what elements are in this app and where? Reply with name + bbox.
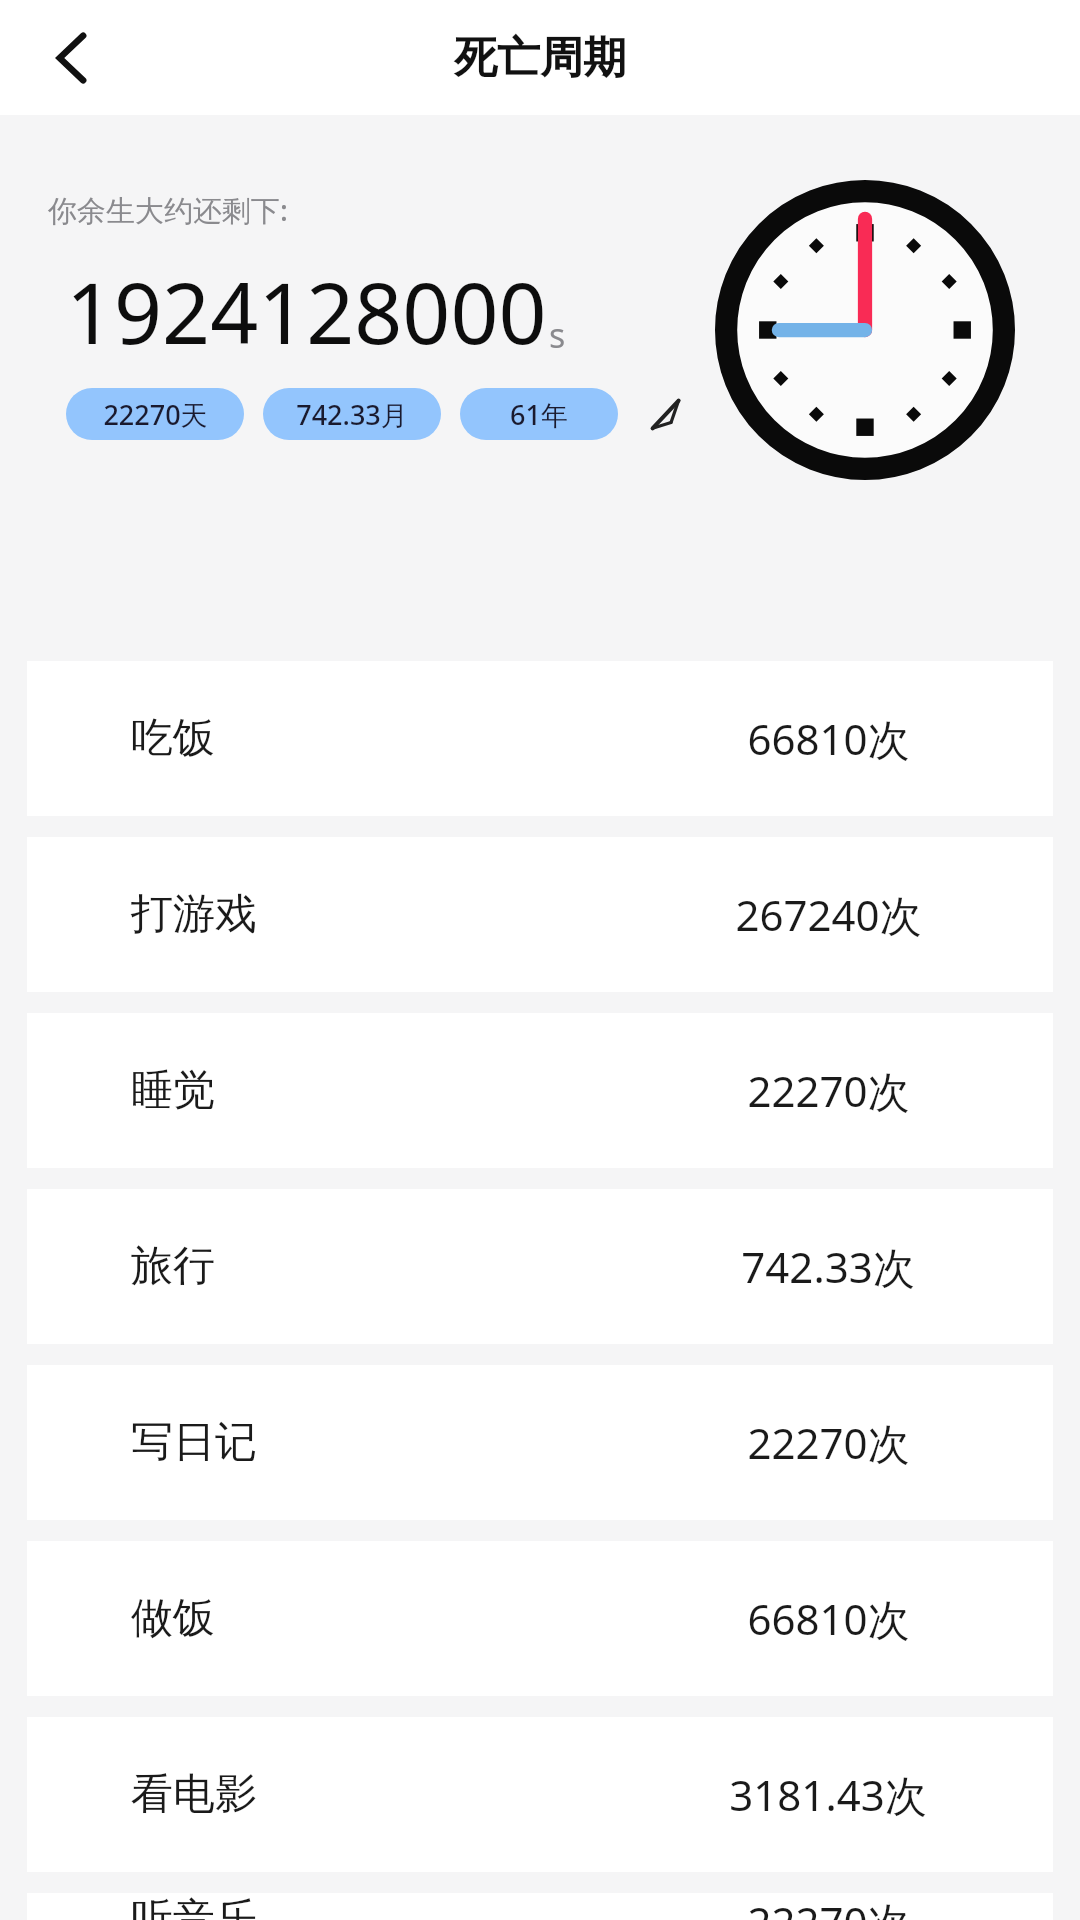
staticText: 22270次 [747,1893,910,1920]
staticText: 66810次 [747,1590,910,1647]
staticText: 1924128000 [66,254,547,368]
button[interactable]: 61年 [460,388,618,440]
staticText: 看电影 [131,1768,257,1821]
staticText: 你余生大约还剩下: [48,190,288,230]
staticText: 3181.43次 [729,1766,927,1823]
staticText: 22270次 [747,1414,910,1471]
staticText: 写日记 [131,1416,257,1469]
button[interactable]: 写日记 [27,1365,1053,1520]
staticText: 61年 [510,396,568,433]
staticText: 打游戏 [131,888,257,941]
staticText: 睡觉 [131,1064,215,1117]
button[interactable]: 睡觉 [27,1013,1053,1168]
button[interactable]: Back [24,10,120,106]
button[interactable]: Edit [638,386,694,442]
button[interactable]: 听音乐 [27,1893,1053,1920]
staticText: 做饭 [131,1592,215,1645]
staticText: s [549,312,566,358]
staticText: 742.33次 [741,1238,915,1295]
staticText: 22270天 [103,396,208,433]
button[interactable]: 22270天 [66,388,244,440]
button[interactable]: 旅行 [27,1189,1053,1344]
staticText: 吃饭 [131,712,215,765]
button[interactable]: 吃饭 [27,661,1053,816]
button[interactable]: 做饭 [27,1541,1053,1696]
button[interactable]: 742.33月 [263,388,441,440]
staticText: 死亡周期 [454,31,626,85]
button[interactable]: 打游戏 [27,837,1053,992]
staticText: 听音乐 [131,1893,257,1920]
button[interactable]: 看电影 [27,1717,1053,1872]
staticText: 66810次 [747,710,910,767]
staticText: 旅行 [131,1240,215,1293]
staticText: 267240次 [735,886,922,943]
staticText: 22270次 [747,1062,910,1119]
staticText: 742.33月 [296,396,408,433]
